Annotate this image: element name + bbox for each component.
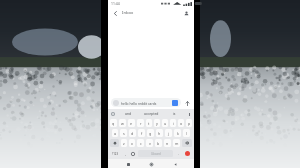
staticText: r [140, 121, 142, 126]
button[interactable]: . [175, 150, 181, 157]
button[interactable]: c [137, 139, 144, 147]
staticText: q [112, 121, 115, 126]
button[interactable]: Account [182, 9, 191, 18]
staticText: is [173, 111, 176, 116]
staticText: a [114, 131, 117, 136]
staticText: and [125, 111, 132, 116]
staticText: k [177, 131, 179, 136]
staticText: ?123 [112, 152, 119, 156]
button[interactable]: n [164, 139, 171, 147]
staticText: p [188, 121, 191, 126]
button[interactable]: l [183, 129, 190, 137]
button[interactable]: Shift [110, 139, 119, 147]
button[interactable]: Attach [183, 99, 191, 107]
staticText: Gboard [151, 152, 161, 156]
staticText: x [131, 141, 133, 146]
staticText: t [148, 121, 150, 126]
staticText: u [164, 121, 167, 126]
staticText: s [123, 131, 125, 136]
button[interactable]: q [110, 119, 117, 127]
button[interactable]: is [163, 109, 186, 118]
button[interactable]: Recents [124, 160, 132, 168]
staticText: g [149, 131, 152, 136]
button[interactable]: u [162, 119, 168, 127]
button[interactable]: r [137, 119, 144, 127]
staticText: 11:44 [111, 1, 120, 6]
staticText: . [178, 151, 179, 156]
button[interactable]: j [165, 129, 172, 137]
staticText: m [175, 141, 179, 146]
staticText: z [123, 141, 125, 146]
staticText: n [166, 141, 169, 146]
button[interactable]: k [174, 129, 181, 137]
staticText: , [125, 151, 126, 156]
staticText: accepted [144, 111, 159, 116]
button[interactable]: p [186, 119, 192, 127]
button[interactable]: More [186, 111, 192, 117]
staticText: h [158, 131, 161, 136]
button[interactable]: Backspace [182, 139, 192, 147]
button[interactable]: w [119, 119, 126, 127]
button[interactable]: t [146, 119, 152, 127]
staticText: o [180, 121, 183, 126]
button[interactable]: , [122, 150, 128, 157]
button[interactable]: Back [171, 160, 179, 168]
button[interactable]: Emoji [130, 150, 136, 157]
button[interactable]: Record [183, 150, 192, 157]
button[interactable]: m [173, 139, 180, 147]
button[interactable]: Google [110, 111, 116, 117]
button[interactable]: f [138, 129, 145, 137]
staticText: Inbox [122, 10, 134, 16]
button[interactable]: y [154, 119, 160, 127]
button[interactable]: o [178, 119, 184, 127]
button[interactable]: e [128, 119, 135, 127]
button[interactable]: g [147, 129, 154, 137]
staticText: c [140, 141, 142, 146]
button[interactable]: Home [147, 160, 155, 168]
button[interactable]: and [116, 109, 140, 118]
staticText: v [149, 141, 151, 146]
button[interactable]: s [120, 129, 127, 137]
button[interactable]: ?123 [110, 150, 120, 157]
button[interactable]: h [156, 129, 163, 137]
staticText: y [156, 121, 158, 126]
staticText: hello hello reddit cards [121, 101, 157, 105]
button[interactable]: Send [172, 100, 178, 106]
button[interactable]: hello hello reddit cards [111, 98, 181, 107]
staticText: d [131, 131, 134, 136]
staticText: l [186, 131, 187, 136]
button[interactable]: Space [138, 150, 173, 157]
staticText: f [141, 131, 143, 136]
staticText: e [130, 121, 133, 126]
button[interactable]: i [170, 119, 176, 127]
staticText: i [173, 121, 174, 126]
button[interactable]: Back [111, 9, 120, 18]
staticText: b [157, 141, 160, 146]
button[interactable]: x [129, 139, 135, 147]
button[interactable]: b [155, 139, 162, 147]
button[interactable]: d [129, 129, 136, 137]
button[interactable]: accepted [140, 109, 163, 118]
staticText: w [121, 121, 124, 126]
button[interactable]: z [121, 139, 127, 147]
button[interactable]: a [112, 129, 118, 137]
button[interactable]: v [146, 139, 153, 147]
staticText: j [168, 131, 169, 136]
